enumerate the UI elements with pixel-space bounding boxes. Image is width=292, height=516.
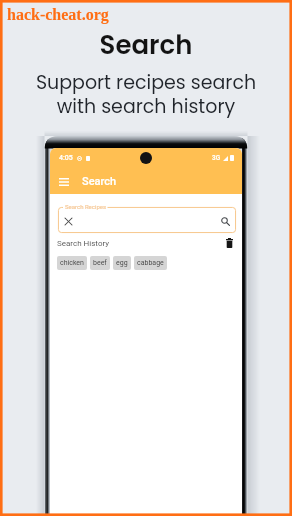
button[interactable]: beef xyxy=(90,256,110,270)
button[interactable]: chicken xyxy=(57,256,87,270)
staticText: Search xyxy=(0,27,292,63)
staticText: 3G xyxy=(212,154,221,162)
staticText: beef xyxy=(93,259,107,267)
button[interactable]: Search xyxy=(219,215,231,227)
button[interactable]: cabbage xyxy=(134,256,167,270)
staticText: Search Recipes xyxy=(65,203,107,210)
button[interactable]: Open navigation menu xyxy=(56,174,71,189)
staticText: 4:05 xyxy=(59,154,73,162)
staticText: Search xyxy=(82,175,117,188)
staticText: hack-cheat.org xyxy=(7,6,109,24)
staticText: egg xyxy=(116,259,128,267)
button[interactable]: Clear xyxy=(65,218,72,225)
staticText: cabbage xyxy=(137,259,164,267)
staticText: Search History xyxy=(57,239,110,248)
staticText: Support recipes search with search histo… xyxy=(0,69,292,120)
button[interactable]: Clear search history xyxy=(223,237,235,249)
staticText: chicken xyxy=(60,259,84,267)
button[interactable]: egg xyxy=(113,256,131,270)
button[interactable]: Search Recipes xyxy=(58,207,236,233)
